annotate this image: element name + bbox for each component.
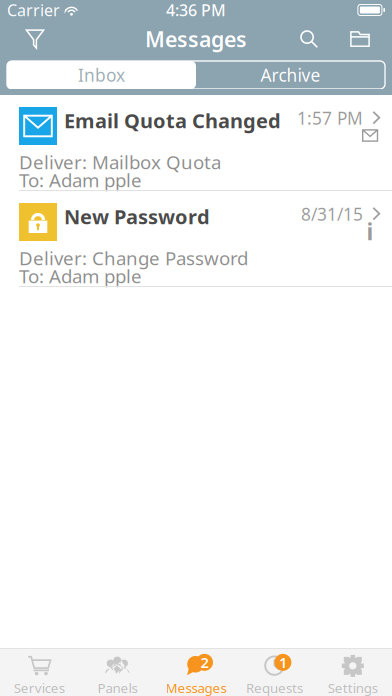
staticText: i <box>366 216 373 246</box>
staticText: Messages <box>165 679 226 696</box>
staticText: Deliver: Change Password <box>19 246 248 270</box>
staticText: Carrier <box>7 0 60 21</box>
button[interactable]: Folders <box>340 20 380 58</box>
button[interactable]: Search <box>289 20 329 58</box>
staticText: To: Adam pple <box>19 168 142 192</box>
staticText: To: Adam pple <box>19 264 142 288</box>
staticText: New Password <box>64 203 210 230</box>
staticText: Archive <box>260 63 320 86</box>
button[interactable]: Settings <box>314 649 392 696</box>
staticText: Inbox <box>78 63 125 86</box>
button[interactable]: 2 <box>157 649 235 696</box>
button[interactable]: Inbox <box>7 61 196 89</box>
staticText: Requests <box>246 679 303 696</box>
staticText: Deliver: Mailbox Quota <box>19 150 221 174</box>
button[interactable]: Email Quota Changed <box>0 95 392 191</box>
staticText: Panels <box>98 679 138 696</box>
button[interactable]: Services <box>0 649 78 696</box>
staticText: 8/31/15 <box>301 202 363 225</box>
button[interactable]: Archive <box>196 61 385 89</box>
button[interactable]: New Password <box>0 191 392 287</box>
button[interactable]: 1 <box>235 649 314 696</box>
staticText: 1:57 PM <box>297 106 363 129</box>
staticText: Messages <box>145 25 247 53</box>
button[interactable]: Panels <box>78 649 157 696</box>
staticText: Email Quota Changed <box>64 107 281 134</box>
staticText: 4:36 PM <box>166 0 226 21</box>
staticText: 2 <box>200 653 208 672</box>
staticText: Services <box>14 679 65 696</box>
staticText: Settings <box>328 679 378 696</box>
button[interactable]: Filter <box>13 20 57 58</box>
staticText: 1 <box>279 653 287 672</box>
